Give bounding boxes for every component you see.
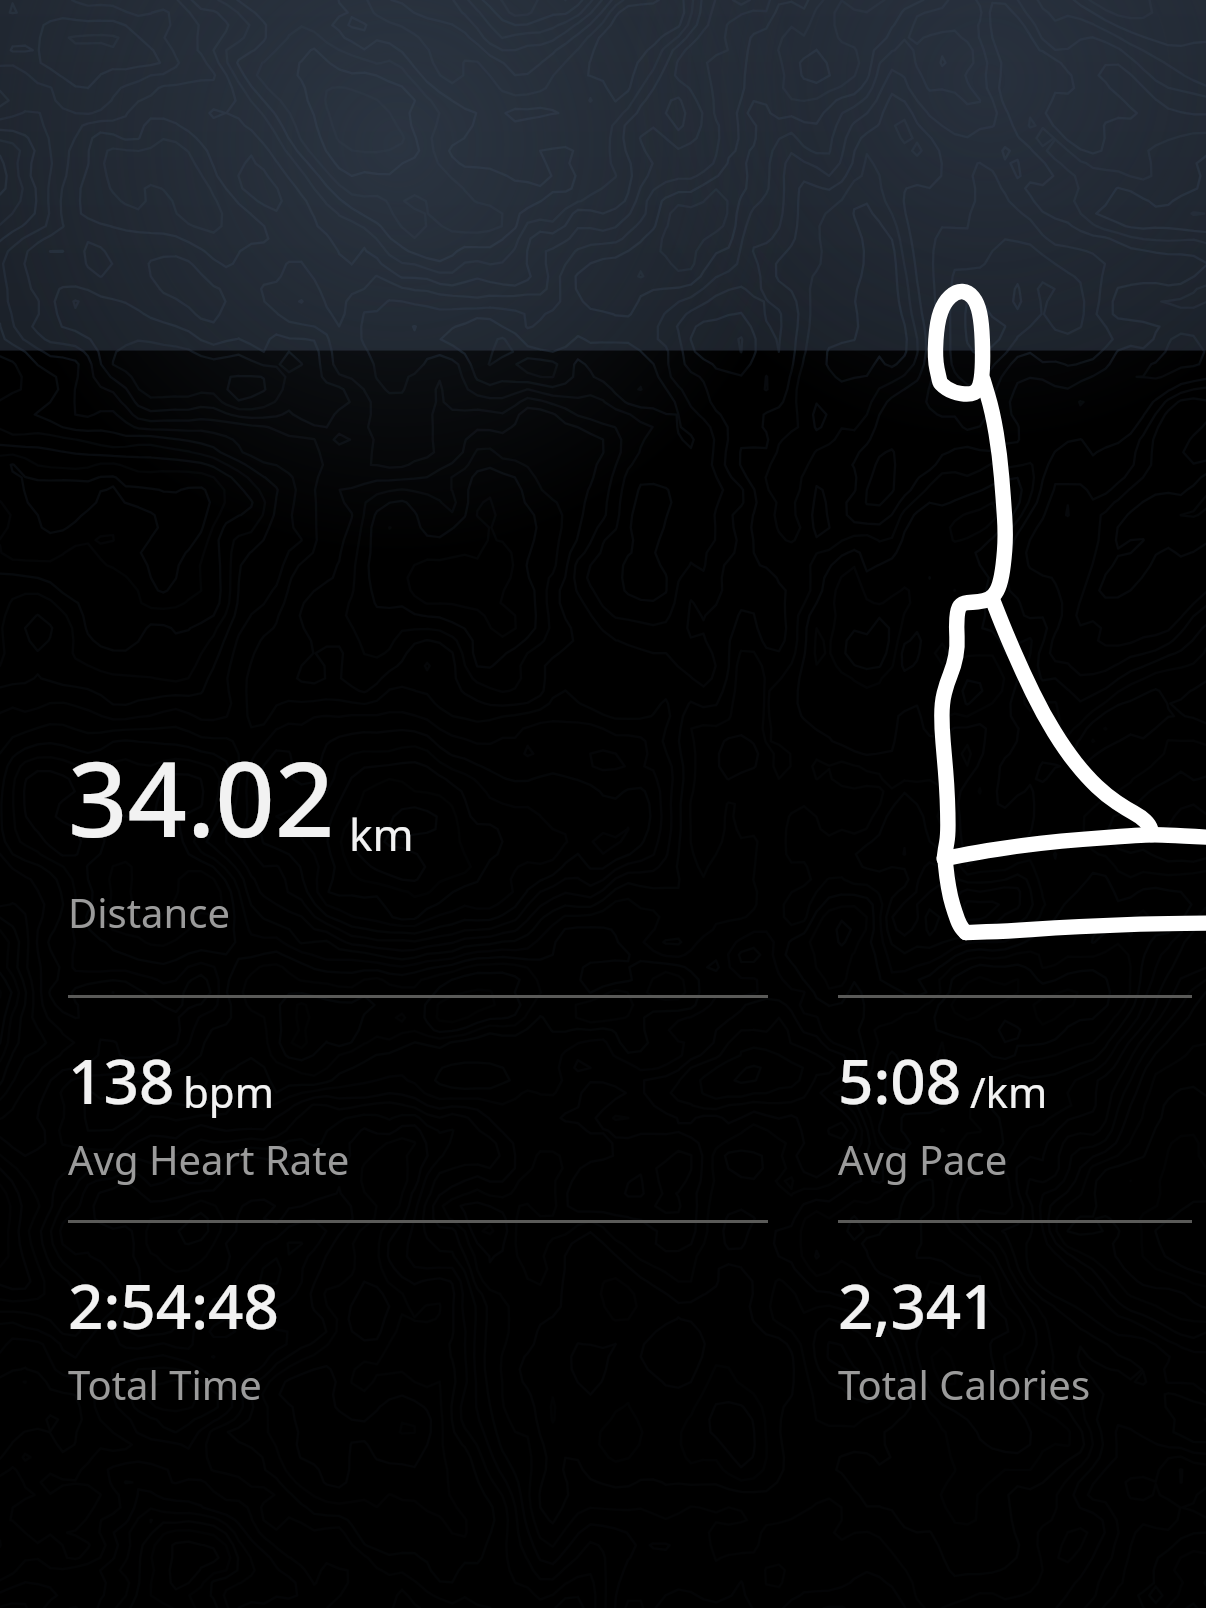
staticText: 34.02 [68, 726, 335, 868]
button[interactable]: 138 [68, 1038, 768, 1186]
button[interactable]: 5:08 [838, 1038, 1192, 1186]
staticText: Avg Pace [838, 1132, 1008, 1186]
staticText: Total Calories [838, 1357, 1091, 1411]
staticText: 2,341 [838, 1263, 997, 1347]
staticText: Avg Heart Rate [68, 1132, 350, 1186]
button[interactable]: Route map [900, 270, 1200, 870]
button[interactable]: 2,341 [838, 1263, 1192, 1411]
staticText: km [349, 804, 414, 864]
staticText: Distance [68, 885, 231, 939]
staticText: bpm [183, 1063, 274, 1120]
staticText: /km [970, 1063, 1048, 1120]
staticText: 5:08 [838, 1038, 962, 1122]
staticText: 2:54:48 [68, 1263, 280, 1347]
staticText: 138 [68, 1038, 175, 1122]
staticText: Total Time [68, 1357, 262, 1411]
button[interactable]: 2:54:48 [68, 1263, 768, 1411]
button[interactable]: 34.02 [68, 726, 1192, 939]
